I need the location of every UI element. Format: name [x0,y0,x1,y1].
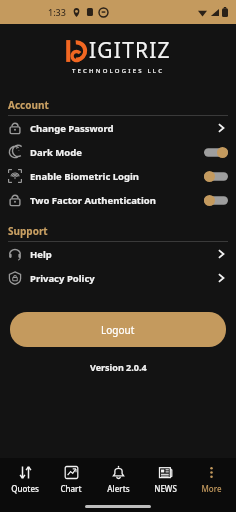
button[interactable]: Change Password [0,116,236,140]
staticText: Enable Biometric Login [30,170,140,183]
staticText: Dark Mode [30,146,82,159]
button[interactable]: NEWS [143,463,187,496]
staticText: Support [8,224,48,238]
button[interactable]: More [189,463,233,496]
staticText: IGITRIZ [89,36,171,65]
staticText: Account [8,98,49,112]
button[interactable]: Two Factor Authentication [0,188,236,212]
staticText: Version 2.0.4 [90,361,147,373]
other: Open [214,121,228,135]
other: Open [214,247,228,261]
button[interactable]: Toggle [204,171,228,182]
button[interactable]: Dark Mode [0,140,236,164]
staticText: Chart [60,483,82,494]
other: Open [214,271,228,285]
staticText: Logout [101,323,135,337]
staticText: Change Password [30,122,114,135]
staticText: NEWS [154,483,177,494]
staticText: Two Factor Authentication [30,194,156,207]
staticText: 1:33 [48,6,66,18]
staticText: More [201,483,222,494]
button[interactable]: Logout [10,312,226,347]
button[interactable]: Quotes [3,463,47,496]
button[interactable]: Enable Biometric Login [0,164,236,188]
button[interactable]: Toggle [204,195,228,206]
staticText: Privacy Policy [30,272,95,285]
button[interactable]: Chart [49,463,93,496]
button[interactable]: Alerts [96,463,140,496]
button[interactable]: Help [0,242,236,266]
staticText: TECHNOLOGIES LLC [72,67,165,75]
staticText: Quotes [11,483,39,494]
staticText: Help [30,248,52,261]
staticText: Alerts [107,483,130,494]
button[interactable]: Toggle [204,147,228,158]
button[interactable]: Privacy Policy [0,266,236,290]
